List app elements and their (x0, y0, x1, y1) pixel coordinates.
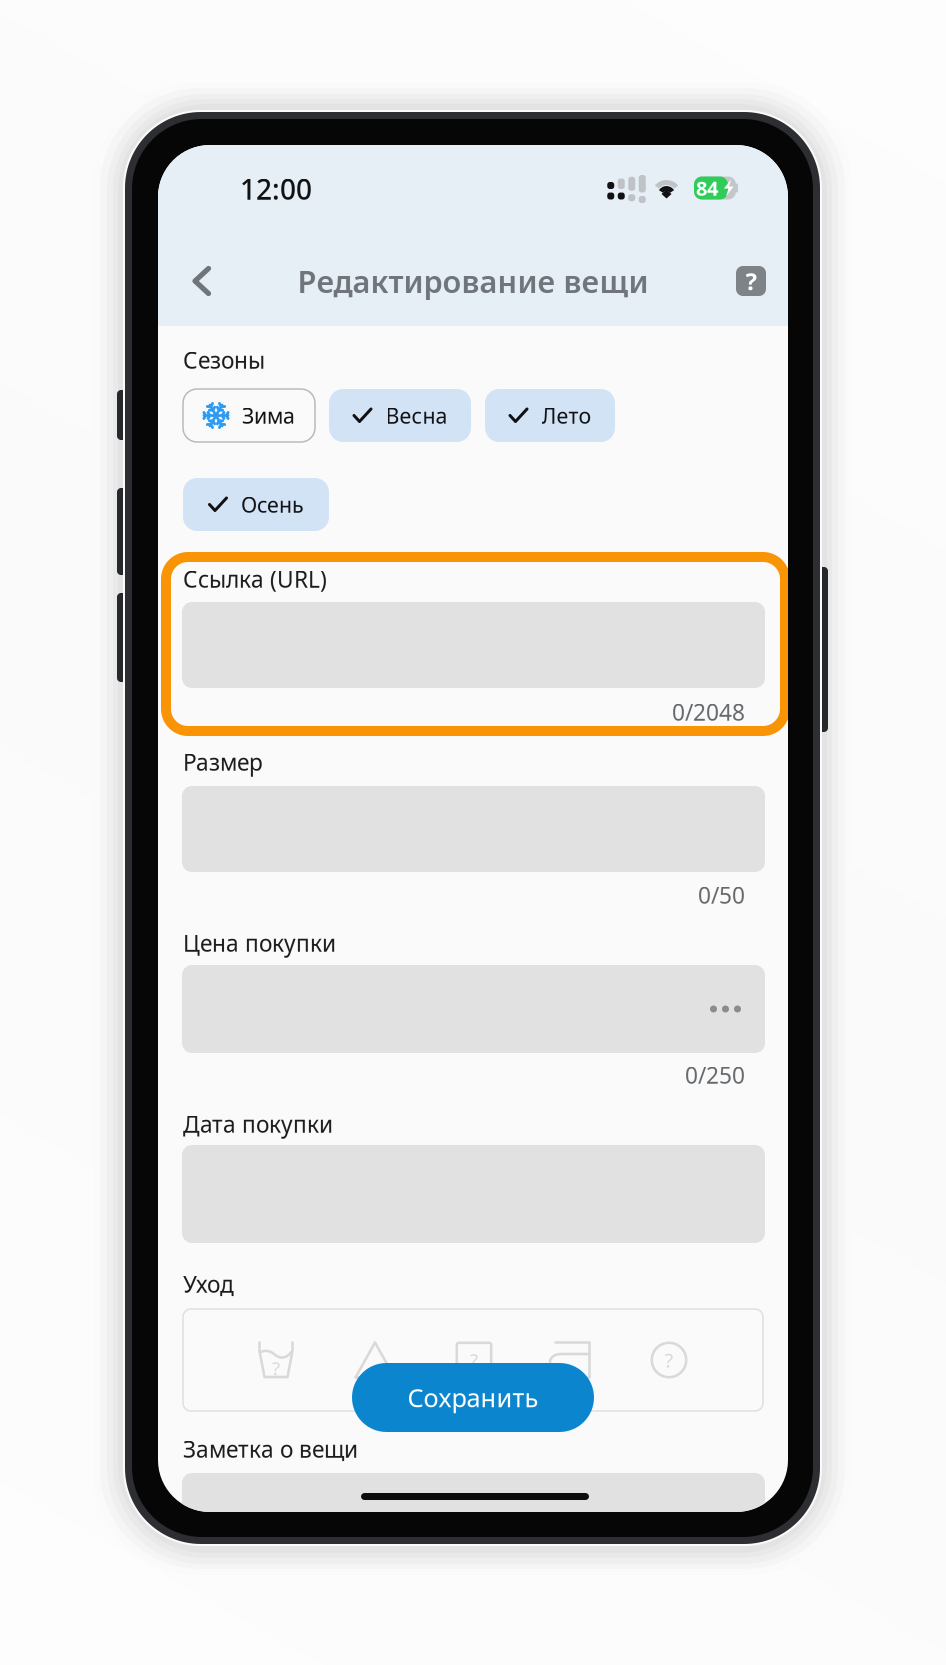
staticText: Ссылка (URL) (183, 564, 327, 594)
staticText: ? (470, 1348, 478, 1372)
button[interactable]: Лето (485, 389, 615, 442)
staticText: 0/250 (685, 1060, 745, 1090)
staticText: 84 (696, 175, 718, 201)
staticText: Лето (541, 401, 591, 430)
staticText: Заметка о вещи (183, 1434, 358, 1464)
button[interactable]: Справка (726, 253, 776, 309)
button[interactable]: Назад (178, 253, 226, 309)
staticText: Уход (183, 1269, 234, 1299)
staticText: 0/2048 (672, 697, 745, 727)
staticText: Дата покупки (183, 1109, 333, 1139)
button[interactable]: Зима (183, 389, 315, 442)
staticText: ? (745, 265, 756, 297)
staticText: Весна (385, 401, 447, 430)
button[interactable]: Осень (183, 478, 329, 531)
staticText: Сезоны (183, 345, 265, 375)
button[interactable]: Сохранить (352, 1363, 594, 1432)
staticText: Зима (242, 401, 295, 430)
staticText: ? (272, 1356, 280, 1380)
staticText: ? (664, 1347, 673, 1373)
staticText: 0/50 (698, 880, 745, 910)
staticText: 12:00 (240, 170, 312, 208)
staticText: Редактирование вещи (297, 261, 648, 301)
staticText: Осень (241, 490, 304, 519)
staticText: Сохранить (407, 1381, 538, 1414)
button[interactable]: Весна (329, 389, 471, 442)
staticText: Размер (183, 747, 263, 777)
staticText: Цена покупки (183, 928, 336, 958)
